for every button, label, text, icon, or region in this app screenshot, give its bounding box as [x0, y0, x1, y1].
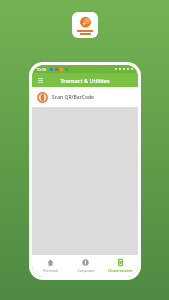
button[interactable]: Corporate — [68, 255, 103, 277]
button[interactable]: Disbursement — [103, 255, 138, 277]
staticText: Disbursement — [108, 268, 133, 273]
button[interactable]: App icon — [72, 12, 98, 38]
staticText: Personal — [43, 268, 58, 273]
staticText: Scan QR/BarCode — [52, 94, 94, 101]
button[interactable]: Personal — [32, 255, 68, 277]
staticText: 10:30 — [36, 67, 47, 72]
staticText: Transact & Utilities — [60, 77, 110, 84]
button[interactable]: Scan QR/BarCode — [32, 87, 138, 107]
button[interactable]: Menu — [35, 75, 45, 85]
staticText: Corporate — [77, 268, 95, 273]
